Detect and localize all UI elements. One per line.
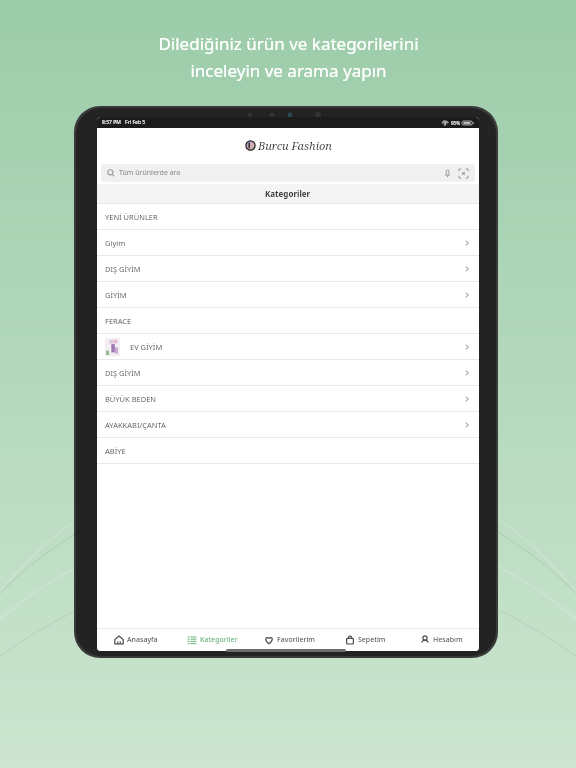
staticText: AYAKKABI/ÇANTA bbox=[105, 420, 166, 430]
staticText: Giyim bbox=[105, 238, 126, 248]
staticText: Sepetim bbox=[358, 635, 386, 645]
button[interactable]: Favorilerim bbox=[251, 629, 327, 651]
staticText: YENİ ÜRÜNLER bbox=[105, 212, 158, 222]
staticText: DIŞ GİYİM bbox=[105, 264, 141, 274]
button[interactable]: YENİ ÜRÜNLER bbox=[97, 204, 479, 230]
staticText: ABİYE bbox=[105, 446, 126, 456]
button[interactable]: Anasayfa bbox=[97, 629, 174, 651]
staticText: GİYİM bbox=[105, 290, 127, 300]
button[interactable]: DIŞ GİYİM bbox=[97, 256, 479, 282]
staticText: 8:57 PM bbox=[102, 119, 121, 126]
button[interactable]: GİYİM bbox=[97, 282, 479, 308]
staticText: Anasayfa bbox=[127, 635, 158, 645]
button[interactable]: AYAKKABI/ÇANTA bbox=[97, 412, 479, 438]
button[interactable]: Barkod tara bbox=[457, 167, 469, 179]
button[interactable]: ABİYE bbox=[97, 438, 479, 464]
staticText: Kategoriler bbox=[200, 635, 238, 645]
button[interactable]: EV GİYİM bbox=[97, 334, 479, 360]
staticText: Fri Feb 5 bbox=[125, 119, 146, 126]
staticText: Hesabım bbox=[433, 635, 463, 645]
button[interactable]: FERACE bbox=[97, 308, 479, 334]
button[interactable]: Sesli arama bbox=[441, 167, 453, 179]
button[interactable]: Hesabım bbox=[403, 629, 479, 651]
button[interactable]: BÜYÜK BEDEN bbox=[97, 386, 479, 412]
staticText: FERACE bbox=[105, 316, 132, 326]
staticText: Favorilerim bbox=[277, 635, 315, 645]
button[interactable]: Giyim bbox=[97, 230, 479, 256]
button[interactable]: Kategoriler bbox=[174, 629, 251, 651]
staticText: Kategoriler bbox=[265, 188, 311, 199]
staticText: EV GİYİM bbox=[130, 342, 163, 352]
button[interactable]: Tüm ürünlerde ara bbox=[101, 164, 475, 182]
staticText: Burcu Fashion bbox=[258, 138, 332, 153]
button[interactable]: DIŞ GİYİM bbox=[97, 360, 479, 386]
button[interactable]: Sepetim bbox=[327, 629, 403, 651]
staticText: Dilediğiniz ürün ve kategorilerini bbox=[158, 32, 419, 55]
staticText: Tüm ürünlerde ara bbox=[119, 168, 181, 178]
staticText: DIŞ GİYİM bbox=[105, 368, 141, 378]
staticText: inceleyin ve arama yapın bbox=[190, 59, 387, 82]
staticText: 95% bbox=[451, 120, 460, 126]
staticText: BÜYÜK BEDEN bbox=[105, 394, 157, 404]
